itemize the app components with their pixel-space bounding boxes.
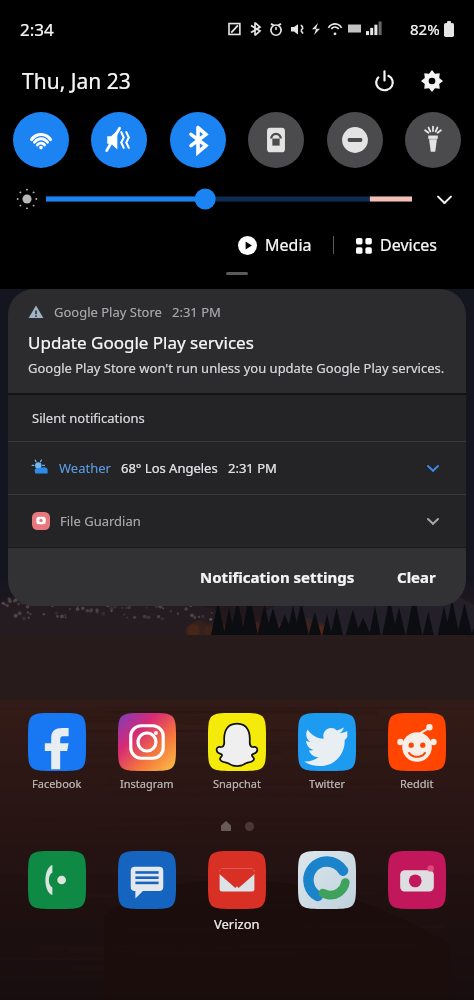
staticText: Instagram [120, 776, 174, 791]
button[interactable]: Snapchat [192, 713, 282, 791]
button[interactable]: Clear [391, 561, 442, 593]
button[interactable]: Instagram [102, 713, 192, 791]
staticText: Update Google Play services [28, 331, 254, 354]
staticText: 2:34 [20, 18, 54, 41]
staticText: Verizon [214, 915, 260, 933]
button[interactable]: Devices [349, 230, 444, 260]
button[interactable]: Edge [282, 851, 372, 909]
button[interactable]: Expand Weather notification [420, 455, 446, 481]
button[interactable]: Weather [8, 442, 466, 494]
button[interactable]: Bluetooth [170, 112, 226, 168]
staticText: Twitter [309, 776, 346, 791]
button[interactable]: Settings [412, 61, 452, 101]
staticText: Reddit [400, 776, 434, 791]
button[interactable]: File Guardian [8, 495, 466, 547]
button[interactable]: Twitter [282, 713, 372, 791]
staticText: Snapchat [213, 776, 261, 791]
staticText: Silent notifications [32, 409, 145, 427]
button[interactable]: Google Play Store [8, 289, 466, 393]
button[interactable]: Power [364, 61, 404, 101]
staticText: Devices [380, 234, 438, 256]
staticText: 2:31 PM [228, 459, 277, 477]
staticText: 82% [410, 19, 440, 39]
staticText: Facebook [32, 776, 82, 791]
staticText: Weather [59, 459, 111, 477]
button[interactable]: Expand quick settings [428, 183, 460, 215]
button[interactable]: Auto rotate lock [248, 112, 304, 168]
button[interactable]: Expand File Guardian notification [420, 508, 446, 534]
staticText: 2:31 PM [172, 303, 221, 321]
button[interactable]: Media [232, 230, 318, 260]
button[interactable]: Notification settings [194, 561, 361, 593]
button[interactable]: Sound off [91, 112, 147, 168]
staticText: Thu, Jan 23 [22, 67, 131, 96]
staticText: Notification settings [200, 567, 355, 587]
button[interactable]: Phone [12, 851, 102, 909]
button[interactable]: Messages [102, 851, 192, 909]
button[interactable]: Do not disturb [327, 112, 383, 168]
staticText: Media [265, 234, 312, 256]
button[interactable]: Camera [372, 851, 462, 909]
button[interactable]: Email [192, 851, 282, 909]
button[interactable]: Wi-Fi [13, 112, 69, 168]
button[interactable]: Flashlight [405, 112, 461, 168]
staticText: Clear [397, 567, 436, 587]
staticText: File Guardian [60, 512, 141, 530]
staticText: 68° Los Angeles [121, 459, 218, 477]
staticText: Google Play Store [54, 303, 162, 321]
button[interactable]: Facebook [12, 713, 102, 791]
staticText: Google Play Store won't run unless you u… [28, 359, 445, 377]
button[interactable]: Reddit [372, 713, 462, 791]
button[interactable]: Brightness [46, 186, 412, 212]
